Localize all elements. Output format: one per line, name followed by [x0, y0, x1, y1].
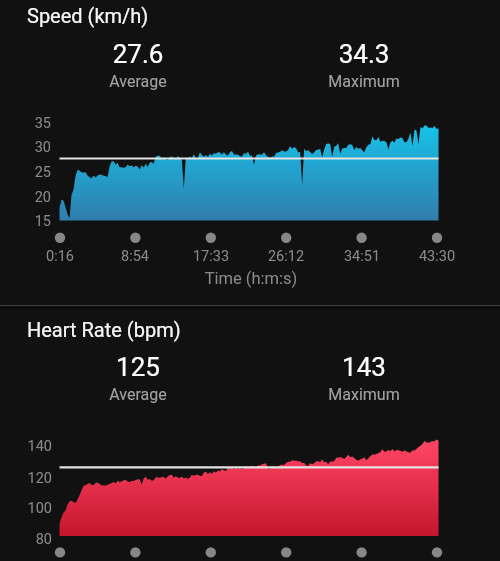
staticText: 15: [0, 213, 51, 230]
staticText: Average: [18, 385, 258, 404]
staticText: 100: [0, 500, 52, 517]
staticText: Speed (km/h): [27, 4, 267, 27]
staticText: 0:16: [0, 248, 180, 265]
staticText: 27.6: [18, 39, 258, 69]
staticText: Average: [18, 72, 258, 91]
staticText: 8:54: [15, 248, 255, 265]
staticText: 17:33: [91, 248, 331, 265]
staticText: 25: [0, 164, 51, 181]
staticText: 140: [0, 438, 52, 455]
staticText: 80: [0, 531, 52, 548]
staticText: 30: [0, 139, 51, 156]
staticText: Maximum: [244, 385, 484, 404]
staticText: Maximum: [244, 72, 484, 91]
staticText: 143: [244, 352, 484, 382]
staticText: 120: [0, 470, 52, 487]
staticText: Time (h:m:s): [131, 269, 371, 288]
staticText: 125: [18, 352, 258, 382]
staticText: 34:51: [242, 248, 482, 265]
staticText: 35: [0, 115, 51, 132]
staticText: 43:30: [317, 248, 500, 265]
staticText: 26:12: [166, 248, 406, 265]
staticText: 20: [0, 189, 51, 206]
staticText: 34.3: [244, 39, 484, 69]
staticText: Heart Rate (bpm): [27, 318, 267, 341]
